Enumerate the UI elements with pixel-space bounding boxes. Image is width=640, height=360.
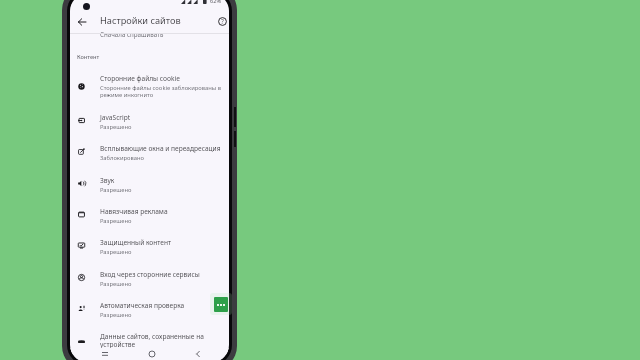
staticText: Всплывающие окна и переадресация bbox=[100, 144, 221, 153]
button[interactable]: Home bbox=[146, 348, 158, 360]
staticText: Разрешено bbox=[100, 311, 132, 319]
staticText: Заблокировано bbox=[100, 154, 145, 162]
staticText: Сначала спрашивать bbox=[100, 30, 164, 38]
staticText: Вход через сторонние сервисы bbox=[100, 270, 200, 279]
button[interactable]: Навязчивая реклама bbox=[70, 204, 229, 228]
button[interactable]: Сторонние файлы cookie bbox=[70, 71, 229, 101]
button[interactable]: More options bbox=[214, 297, 228, 312]
button[interactable]: Звук bbox=[70, 173, 229, 197]
button[interactable]: Вход через сторонние сервисы bbox=[70, 267, 229, 291]
staticText: Сторонние файлы cookie bbox=[100, 74, 180, 83]
staticText: Разрешено bbox=[100, 186, 132, 194]
staticText: ? bbox=[221, 17, 224, 26]
staticText: Разрешено bbox=[100, 280, 132, 288]
button[interactable]: Всплывающие окна и переадресация bbox=[70, 141, 229, 165]
button[interactable]: JavaScript bbox=[70, 110, 229, 134]
staticText: Разрешено bbox=[100, 248, 132, 256]
staticText: Звук bbox=[100, 176, 115, 185]
button[interactable]: Данные сайтов, сохраненные на устройстве bbox=[70, 329, 229, 353]
button[interactable]: Recents bbox=[99, 348, 111, 360]
staticText: Данные сайтов, сохраненные на устройстве bbox=[100, 332, 226, 349]
button[interactable]: Защищенный контент bbox=[70, 235, 229, 259]
staticText: Сторонние файлы cookie заблокированы в р… bbox=[100, 84, 226, 99]
staticText: Контент bbox=[77, 53, 100, 61]
button[interactable]: Back bbox=[75, 15, 88, 28]
staticText: Автоматическая проверка bbox=[100, 301, 185, 310]
button[interactable]: Help bbox=[216, 15, 228, 27]
staticText: Защищенный контент bbox=[100, 238, 172, 247]
staticText: 62% bbox=[210, 0, 222, 5]
button[interactable]: Автоматическая проверка bbox=[70, 298, 229, 322]
staticText: Разрешено bbox=[100, 123, 132, 131]
staticText: JavaScript bbox=[100, 113, 131, 122]
staticText: Навязчивая реклама bbox=[100, 207, 168, 216]
staticText: Разрешено bbox=[100, 217, 132, 225]
button[interactable]: Back bbox=[192, 348, 204, 360]
staticText: Настройки сайтов bbox=[100, 14, 181, 27]
